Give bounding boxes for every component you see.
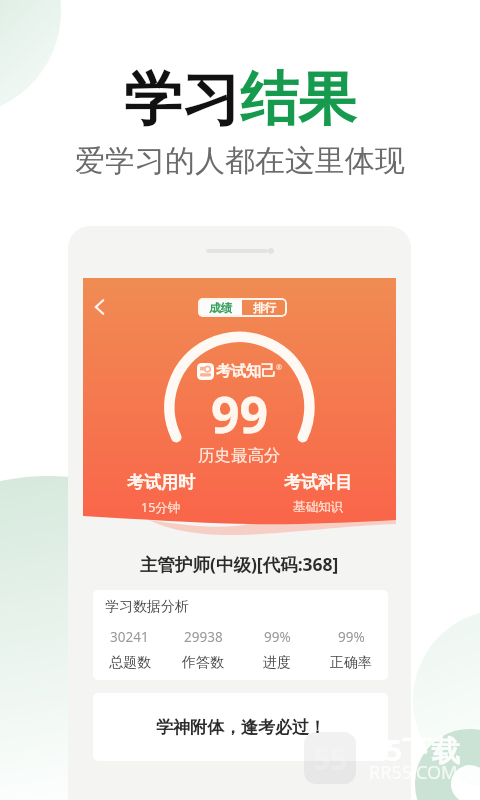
button[interactable]: 学神附体，逢考必过！: [93, 693, 388, 761]
staticText: 考试用时: [127, 472, 195, 493]
button[interactable]: Back: [86, 293, 114, 321]
staticText: 进度: [263, 654, 291, 672]
staticText: 历史最高分: [198, 445, 281, 465]
staticText: 99%: [338, 628, 365, 646]
button[interactable]: 排行: [242, 298, 287, 317]
button[interactable]: 学习数据分析: [93, 590, 388, 680]
staticText: 学习: [124, 63, 240, 136]
staticText: 基础知识: [293, 499, 343, 515]
staticText: 正确率: [330, 654, 372, 672]
staticText: 55: [313, 738, 348, 779]
staticText: 主管护师(中级)[代码:368]: [140, 552, 339, 576]
staticText: 学神附体，逢考必过！: [156, 717, 326, 738]
staticText: 学习数据分析: [105, 598, 189, 616]
staticText: 作答数: [182, 654, 224, 672]
staticText: 总题数: [109, 654, 151, 672]
staticText: 爱学习的人都在这里体现: [75, 142, 405, 180]
staticText: 30241: [110, 628, 149, 646]
staticText: ®: [276, 363, 282, 373]
staticText: 55下载: [369, 730, 461, 770]
staticText: 考试科目: [284, 472, 352, 493]
staticText: 考试知己: [216, 362, 276, 381]
staticText: 排行: [253, 301, 276, 315]
staticText: 29938: [184, 628, 223, 646]
staticText: 99: [211, 380, 269, 434]
staticText: 99%: [264, 628, 291, 646]
staticText: 15分钟: [141, 499, 181, 516]
staticText: 结果: [240, 63, 356, 136]
staticText: 成绩: [209, 301, 232, 315]
button[interactable]: 成绩: [198, 298, 242, 317]
staticText: RR55.COM: [369, 760, 458, 785]
